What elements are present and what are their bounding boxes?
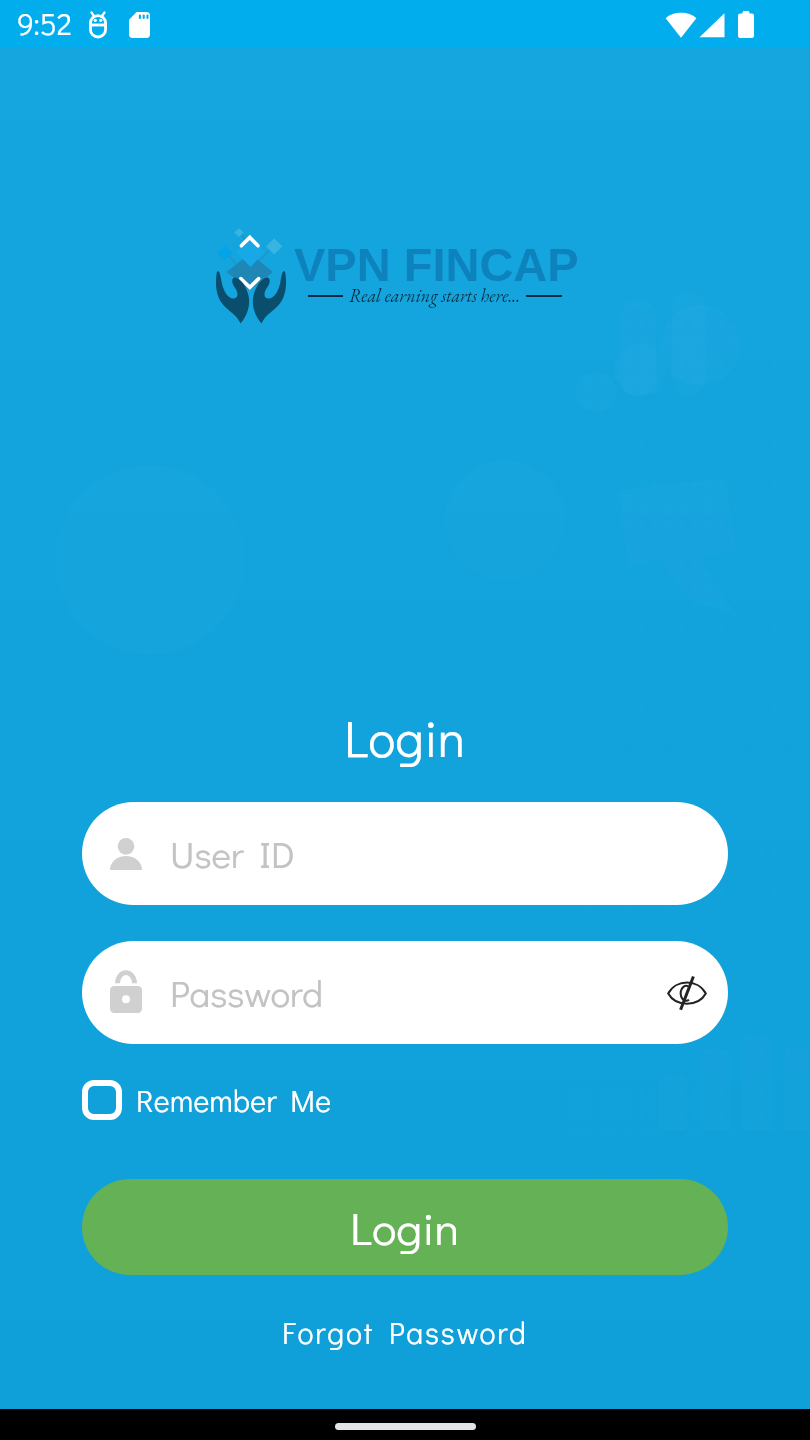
button[interactable]: Forgot Password — [272, 1308, 538, 1357]
button[interactable]: Remember Me — [82, 1074, 332, 1126]
staticText: Real earning starts here... — [349, 284, 521, 307]
button[interactable]: Login — [82, 1179, 728, 1275]
staticText: 9:52 — [17, 4, 72, 43]
staticText: Password — [170, 968, 323, 1017]
staticText: User ID — [170, 829, 295, 878]
staticText: Login — [344, 704, 466, 771]
staticText: Remember Me — [136, 1081, 332, 1120]
staticText: VPN FINCAP — [294, 238, 579, 291]
button[interactable]: Show password — [661, 967, 713, 1019]
button[interactable]: Password — [82, 941, 728, 1044]
staticText: Login — [350, 1197, 460, 1257]
button[interactable]: User ID — [82, 802, 728, 905]
